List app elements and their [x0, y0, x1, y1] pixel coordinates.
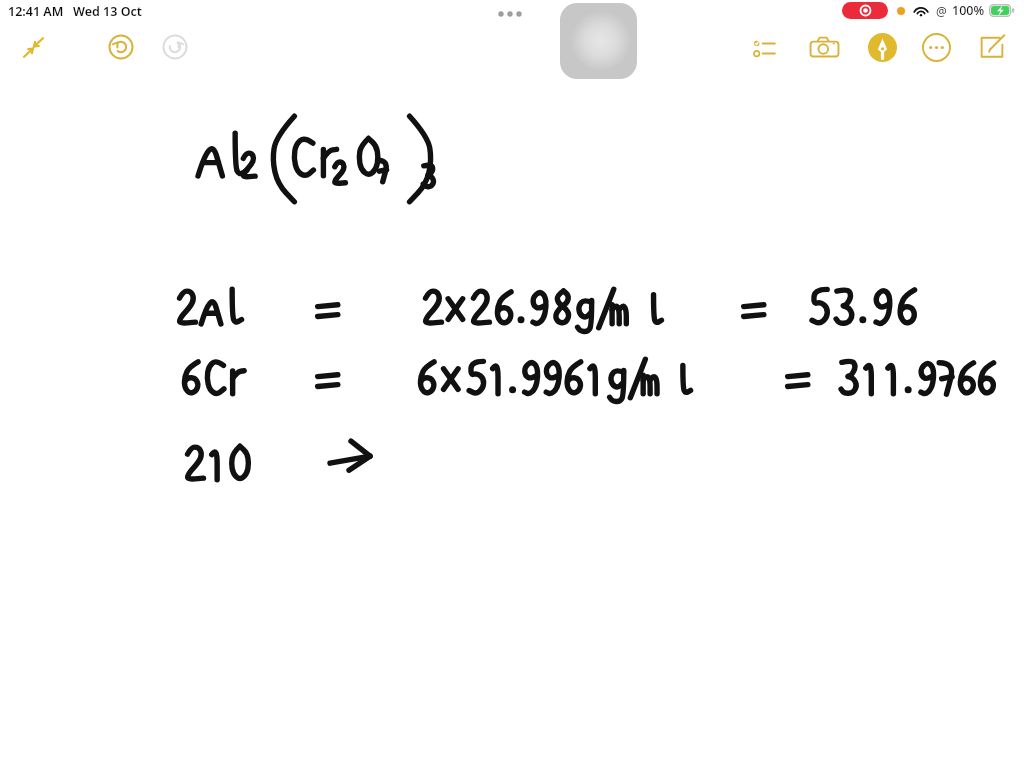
- staticText: @: [936, 3, 947, 19]
- button[interactable]: Redo: [158, 30, 192, 64]
- button[interactable]: Collapse: [16, 30, 50, 64]
- staticText: 12:41 AM Wed 13 Oct: [8, 3, 142, 20]
- button[interactable]: Pen: [864, 29, 900, 65]
- button[interactable]: Tool: [560, 3, 637, 79]
- button[interactable]: Undo: [104, 30, 138, 64]
- button[interactable]: Checklist: [747, 31, 781, 65]
- staticText: 100%: [952, 2, 985, 19]
- button[interactable]: Camera: [805, 28, 843, 66]
- button[interactable]: Compose: [974, 29, 1010, 65]
- button[interactable]: Screen recording: [842, 2, 888, 19]
- button[interactable]: Window controls: [490, 5, 530, 23]
- button[interactable]: More options: [918, 29, 954, 65]
